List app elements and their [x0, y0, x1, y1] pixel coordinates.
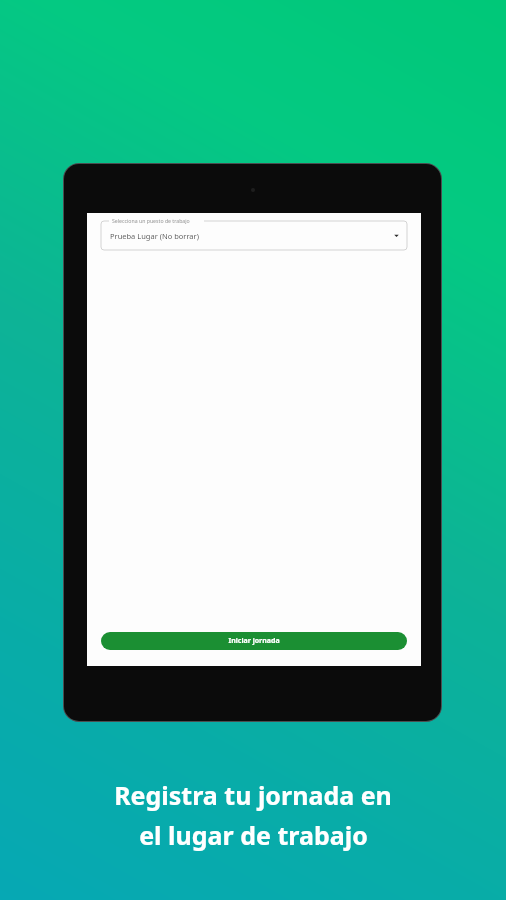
staticText: el lugar de trabajo [139, 818, 368, 852]
staticText: Iniciar jornada [228, 636, 280, 646]
staticText: Registra tu jornada en [114, 778, 392, 812]
button[interactable]: Iniciar jornada [101, 632, 407, 650]
staticText: Prueba Lugar (No borrar) [110, 231, 199, 241]
button[interactable]: Selecciona un puesto de trabajo [101, 221, 407, 250]
staticText: Selecciona un puesto de trabajo [112, 217, 190, 224]
